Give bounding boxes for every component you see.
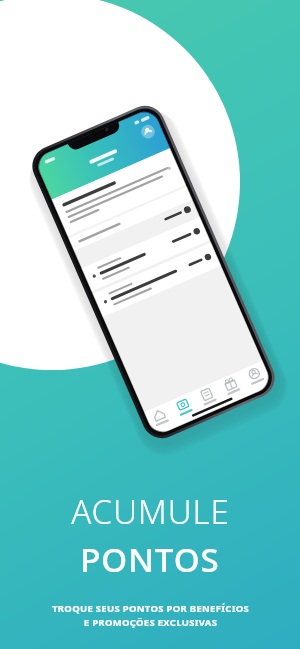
button[interactable]: ACUMULE [0, 0, 300, 649]
staticText: PONTOS [80, 537, 220, 582]
button[interactable]: App preview [20, 100, 290, 400]
staticText: TROQUE SEUS PONTOS POR BENEFÍCIOS E PROM… [52, 602, 249, 629]
staticText: ACUMULE [71, 489, 230, 534]
